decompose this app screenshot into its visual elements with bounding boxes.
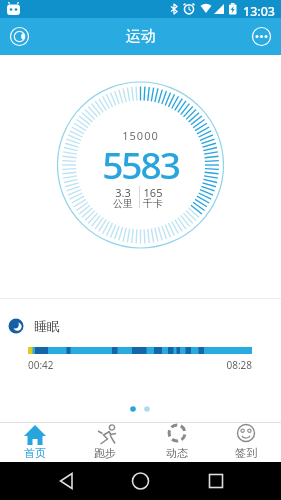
staticText: 首页 [5,446,65,460]
staticText: 动态 [147,446,207,460]
staticText: 08:28 [192,358,252,372]
staticText: 运动 [100,27,181,46]
button[interactable] [190,462,240,500]
staticText: 5583 [90,139,191,189]
button[interactable] [210,422,281,462]
button[interactable] [0,422,70,462]
staticText: 13:03 [238,3,280,20]
button[interactable] [6,23,33,50]
staticText: 165 [133,185,173,200]
staticText: 睡眠 [34,318,94,334]
button[interactable] [248,23,275,50]
button[interactable] [40,462,90,500]
staticText: 签到 [216,446,276,460]
staticText: 3.3 [103,185,143,200]
button[interactable] [140,422,210,462]
button[interactable] [115,462,165,500]
staticText: 千卡 [133,197,173,210]
staticText: 公里 [103,197,143,210]
button[interactable] [70,422,140,462]
staticText: 00:42 [28,358,88,372]
staticText: 跑步 [75,446,135,460]
staticText: 15000 [100,128,181,143]
